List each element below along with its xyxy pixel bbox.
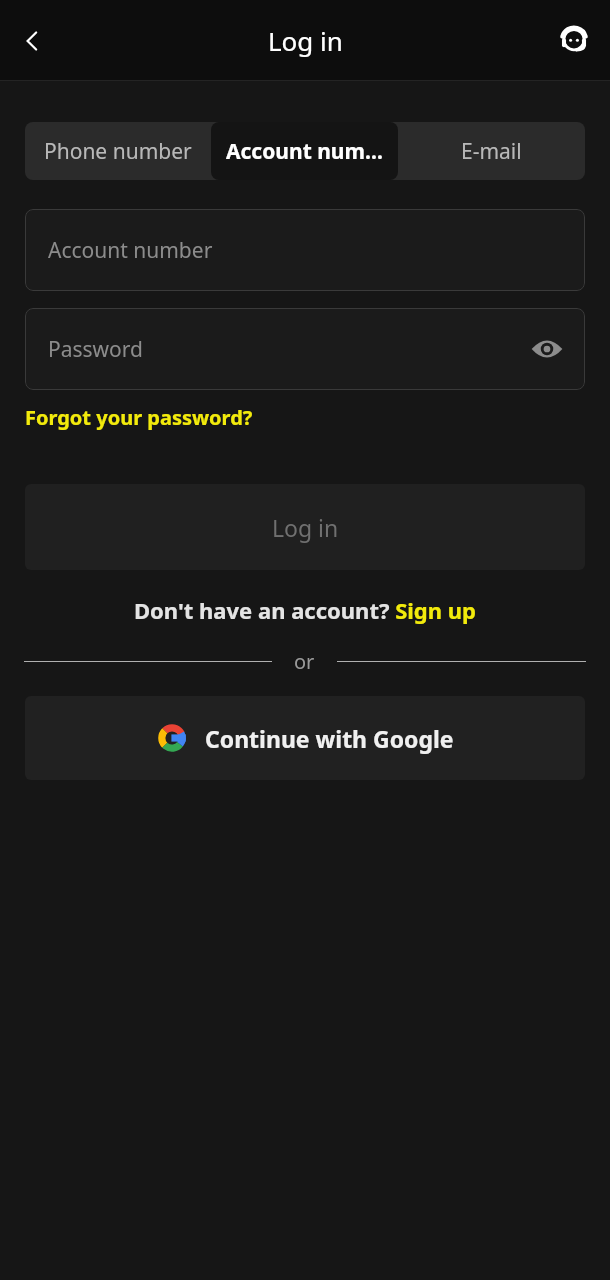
button[interactable]: Phone number bbox=[25, 122, 211, 180]
button[interactable]: E-mail bbox=[398, 122, 585, 180]
button[interactable]: Forgot your password? bbox=[25, 402, 253, 433]
staticText: Account num… bbox=[226, 137, 383, 166]
button[interactable]: Log in bbox=[25, 484, 585, 570]
staticText: Account number bbox=[48, 236, 213, 265]
button[interactable]: Password bbox=[25, 308, 585, 390]
staticText: Forgot your password? bbox=[25, 404, 253, 431]
button[interactable]: Account num… bbox=[211, 122, 398, 180]
staticText: Continue with Google bbox=[205, 723, 454, 754]
button[interactable]: Continue with Google bbox=[25, 696, 585, 780]
staticText: or bbox=[294, 648, 315, 675]
staticText: Log in bbox=[268, 23, 343, 58]
staticText: Log in bbox=[272, 512, 339, 543]
staticText: Phone number bbox=[44, 137, 192, 166]
button[interactable]: Customer support bbox=[550, 17, 598, 65]
button[interactable]: Account number bbox=[25, 209, 585, 291]
staticText: Don't have an account? Sign up bbox=[134, 595, 476, 625]
button[interactable]: Show password bbox=[525, 327, 569, 371]
button[interactable]: Don't have an account? Sign up bbox=[134, 595, 476, 625]
staticText: Password bbox=[48, 335, 143, 364]
staticText: E-mail bbox=[461, 137, 522, 166]
button[interactable]: Back bbox=[8, 17, 56, 65]
